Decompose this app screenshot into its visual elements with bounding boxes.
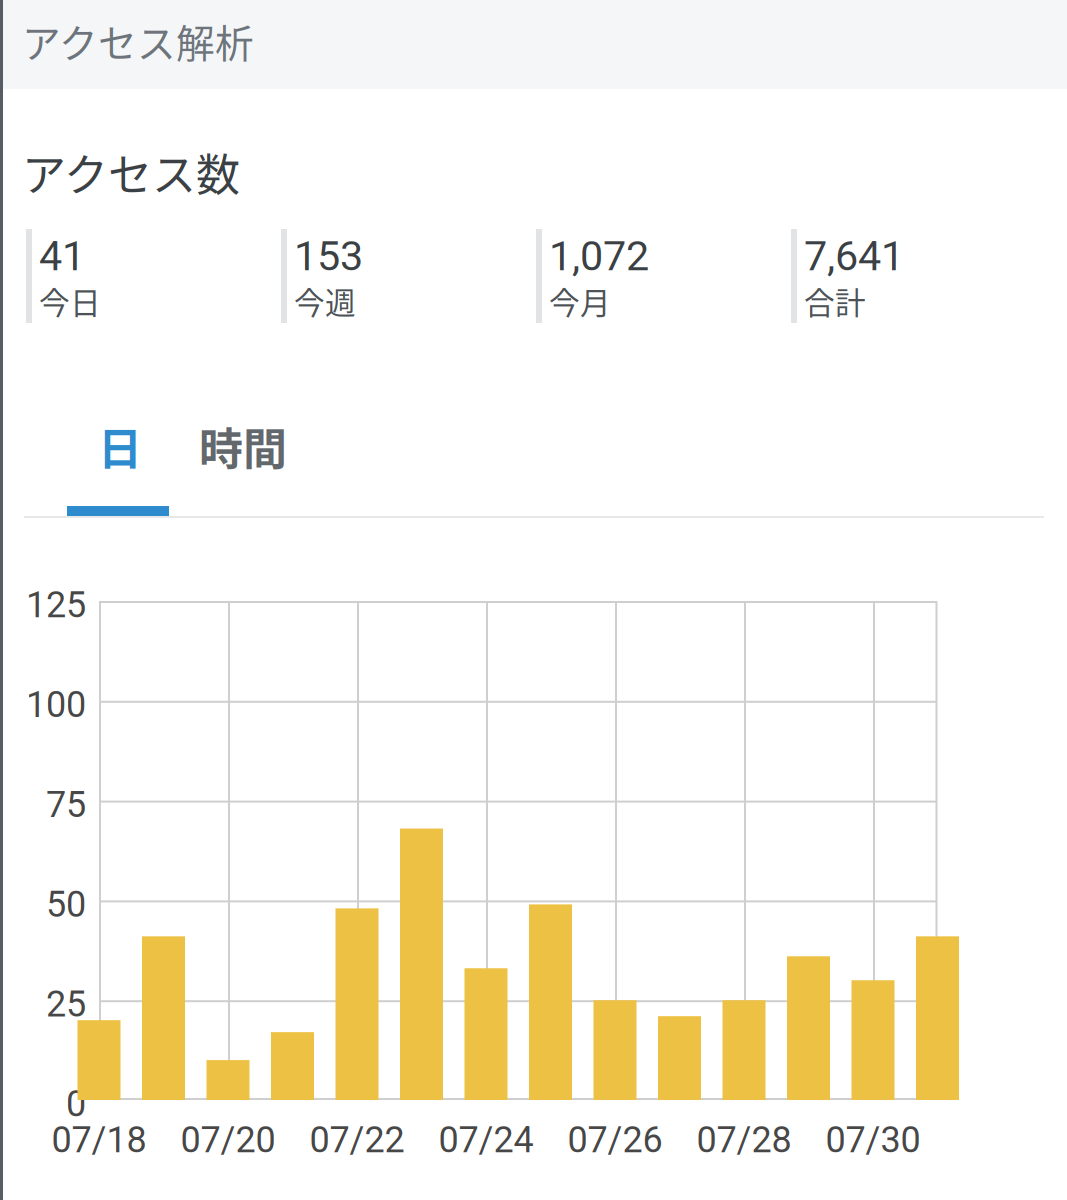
button[interactable]: 7,641 xyxy=(791,229,1046,323)
staticText: 41 xyxy=(39,232,85,280)
staticText: 100 xyxy=(26,684,86,726)
staticText: 今日 xyxy=(39,279,101,323)
staticText: アクセス数 xyxy=(22,140,240,204)
staticText: 07/26 xyxy=(567,1119,662,1161)
staticText: 07/30 xyxy=(825,1119,920,1161)
staticText: 125 xyxy=(26,584,86,626)
staticText: 75 xyxy=(46,783,86,826)
button[interactable]: 時間 xyxy=(173,398,313,494)
staticText: アクセス解析 xyxy=(22,13,254,69)
staticText: 25 xyxy=(46,983,86,1025)
button[interactable]: 日 xyxy=(67,398,173,494)
staticText: 1,072 xyxy=(549,232,649,280)
staticText: 日 xyxy=(98,414,142,478)
button[interactable]: 1,072 xyxy=(536,229,791,323)
button[interactable]: 41 xyxy=(26,229,281,323)
staticText: 07/28 xyxy=(696,1119,791,1161)
staticText: 07/18 xyxy=(51,1119,146,1161)
staticText: 50 xyxy=(46,883,86,925)
staticText: 153 xyxy=(294,232,363,280)
staticText: 今月 xyxy=(549,279,611,323)
staticText: 0 xyxy=(66,1083,86,1125)
staticText: 7,641 xyxy=(804,232,904,280)
staticText: 合計 xyxy=(804,279,866,323)
staticText: 07/20 xyxy=(180,1119,275,1161)
staticText: 07/22 xyxy=(309,1119,404,1161)
staticText: 07/24 xyxy=(438,1119,533,1161)
staticText: 時間 xyxy=(199,414,287,478)
button[interactable]: 153 xyxy=(281,229,536,323)
staticText: 今週 xyxy=(294,279,356,323)
